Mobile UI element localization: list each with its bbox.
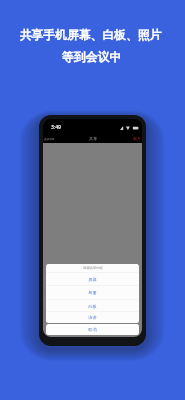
staticText: 取消 (88, 327, 97, 332)
button[interactable]: 白板 (46, 300, 139, 312)
staticText: 3:49 (51, 124, 61, 131)
staticText: 相册 (88, 290, 97, 295)
staticText: 离开 (133, 136, 141, 141)
button[interactable]: 屏幕 (46, 273, 139, 285)
button[interactable]: 选择共享内容 (46, 264, 139, 272)
staticText: 等到会议中 (0, 50, 184, 65)
staticText: 选择共享内容 (83, 266, 103, 270)
button[interactable]: 会议信息 (44, 133, 55, 143)
button[interactable]: 相册 (46, 286, 139, 298)
staticText: 屏幕 (88, 277, 97, 282)
button[interactable]: 取消 (46, 324, 139, 335)
button[interactable]: 演讲 (46, 312, 139, 323)
staticText: 共享手机屏幕、白板、照片 (0, 28, 183, 43)
button[interactable]: 离开 (128, 133, 142, 143)
staticText: 会议信息 (44, 137, 55, 140)
staticText: 演讲 (88, 315, 97, 320)
other: Signal, Wi-Fi and battery status (120, 126, 140, 130)
staticText: 共享 (89, 136, 97, 141)
button[interactable]: 共享 (84, 133, 101, 143)
staticText: 白板 (88, 304, 97, 309)
